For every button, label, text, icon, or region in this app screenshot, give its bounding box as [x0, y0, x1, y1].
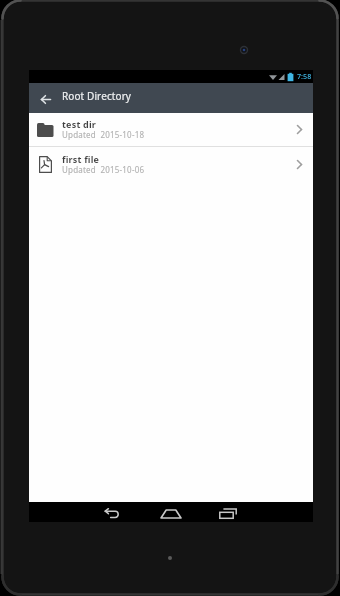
staticText: first file: [62, 153, 100, 165]
button[interactable]: first file: [29, 147, 313, 182]
button[interactable]: [29, 83, 62, 113]
button[interactable]: test dir: [29, 113, 313, 146]
staticText: test dir: [62, 118, 97, 130]
button[interactable]: [91, 502, 131, 522]
staticText: Updated 2015-10-06: [62, 164, 145, 175]
button[interactable]: [208, 502, 248, 522]
button[interactable]: [151, 502, 191, 522]
staticText: 7:58: [297, 71, 312, 81]
staticText: Updated 2015-10-18: [62, 129, 145, 140]
staticText: Root Directory: [62, 89, 132, 103]
